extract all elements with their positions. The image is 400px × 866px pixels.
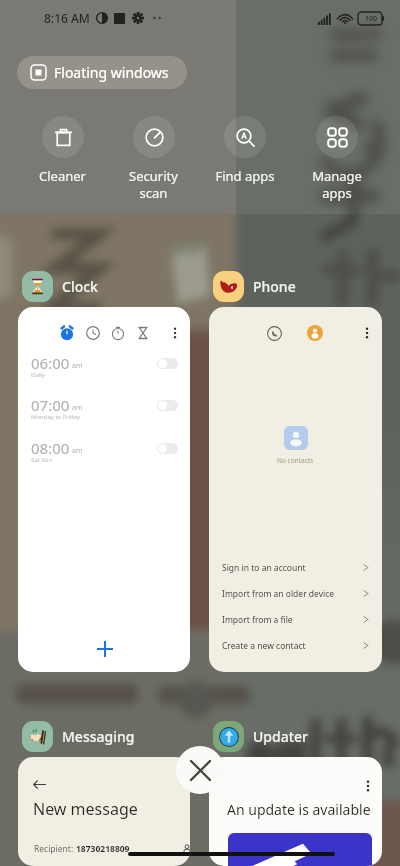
staticText: Cleaner xyxy=(39,167,86,185)
button[interactable]: 06:00 xyxy=(18,352,190,386)
button[interactable]: More options xyxy=(361,779,375,793)
button[interactable]: Phone xyxy=(213,269,296,303)
button[interactable]: More options xyxy=(360,326,374,340)
staticText: Phone xyxy=(253,277,296,296)
staticText: Monday to Friday xyxy=(31,413,81,421)
button[interactable]: Close all xyxy=(176,746,224,794)
staticText: 08:00 xyxy=(31,438,70,458)
staticText: 06:00 xyxy=(31,353,70,373)
button[interactable]: Messaging xyxy=(22,719,135,753)
button[interactable]: 06:00 xyxy=(18,307,190,672)
button[interactable]: Add alarm xyxy=(96,640,114,658)
staticText: 07:00 xyxy=(31,395,70,415)
button[interactable]: Import from an older device xyxy=(209,581,382,606)
button[interactable]: Back xyxy=(18,757,190,866)
button[interactable]: Back xyxy=(33,778,46,791)
button[interactable]: Clock xyxy=(22,269,98,303)
staticText: am xyxy=(72,403,83,413)
staticText: An update is available xyxy=(227,800,371,819)
button[interactable]: Dial pad xyxy=(209,307,382,672)
staticText: am xyxy=(72,361,83,371)
staticText: Sign in to an account xyxy=(222,562,306,574)
staticText: am xyxy=(72,446,83,456)
staticText: 8:16 AM xyxy=(44,10,90,26)
button[interactable]: Dial pad xyxy=(267,326,282,341)
staticText: Sat Sun xyxy=(31,456,53,464)
staticText: Recipient: xyxy=(34,843,76,855)
button[interactable]: Cleaner xyxy=(17,116,108,185)
button[interactable]: More options xyxy=(209,757,382,866)
button[interactable]: Manage apps xyxy=(291,116,383,202)
staticText: Security scan xyxy=(129,167,178,202)
button[interactable]: 08:00 xyxy=(18,437,190,471)
button[interactable]: Security scan xyxy=(108,116,199,202)
button[interactable]: 07:00 xyxy=(18,394,190,428)
staticText: 18730218809 xyxy=(76,843,130,855)
staticText: Manage apps xyxy=(312,167,362,202)
button[interactable]: Sign in to an account xyxy=(209,555,382,580)
staticText: Floating windows xyxy=(54,63,169,82)
staticText: Import from an older device xyxy=(222,588,335,600)
staticText: Daily xyxy=(31,371,45,379)
staticText: No contacts xyxy=(277,456,314,465)
button[interactable]: Contacts xyxy=(307,325,323,341)
button[interactable]: Floating windows xyxy=(17,56,187,89)
button[interactable]: Updater xyxy=(213,719,309,753)
button[interactable]: Create a new contact xyxy=(209,633,382,658)
staticText: Find apps xyxy=(215,167,275,185)
staticText: New message xyxy=(33,798,138,820)
staticText: Create a new contact xyxy=(222,640,306,652)
button[interactable]: Find apps xyxy=(199,116,291,185)
staticText: Messaging xyxy=(62,727,135,746)
staticText: 100 xyxy=(365,14,378,24)
staticText: Updater xyxy=(253,727,309,746)
staticText: Import from a file xyxy=(222,614,293,626)
staticText: Clock xyxy=(62,277,98,296)
button[interactable]: Import from a file xyxy=(209,607,382,632)
